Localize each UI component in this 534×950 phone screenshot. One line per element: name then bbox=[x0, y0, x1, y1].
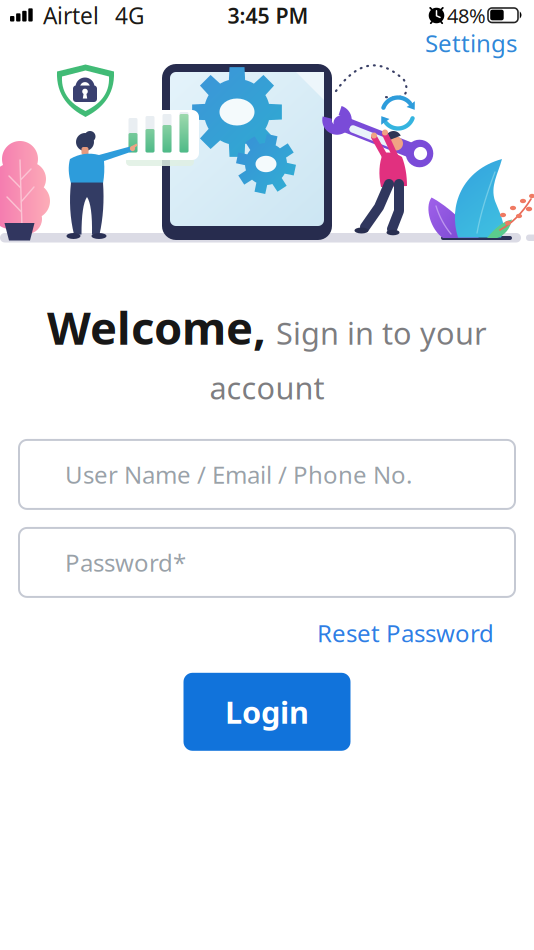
staticText: 4G bbox=[115, 0, 145, 30]
button[interactable]: Reset Password bbox=[317, 617, 494, 649]
staticText: Welcome, bbox=[47, 297, 266, 357]
button[interactable]: Login bbox=[183, 673, 350, 751]
staticText: Login bbox=[225, 691, 309, 732]
staticText: 48% bbox=[447, 2, 486, 29]
staticText: Settings bbox=[425, 27, 517, 59]
staticText: Password* bbox=[65, 546, 186, 578]
staticText: account bbox=[209, 367, 324, 408]
button[interactable]: Settings bbox=[425, 27, 517, 59]
staticText: Airtel bbox=[43, 0, 99, 30]
staticText: User Name / Email / Phone No. bbox=[65, 458, 412, 490]
button[interactable]: Password* bbox=[19, 528, 515, 597]
button[interactable]: User Name / Email / Phone No. bbox=[19, 440, 515, 509]
staticText: Reset Password bbox=[317, 617, 494, 649]
staticText: Sign in to your bbox=[276, 312, 487, 353]
staticText: 3:45 PM bbox=[227, 1, 308, 30]
